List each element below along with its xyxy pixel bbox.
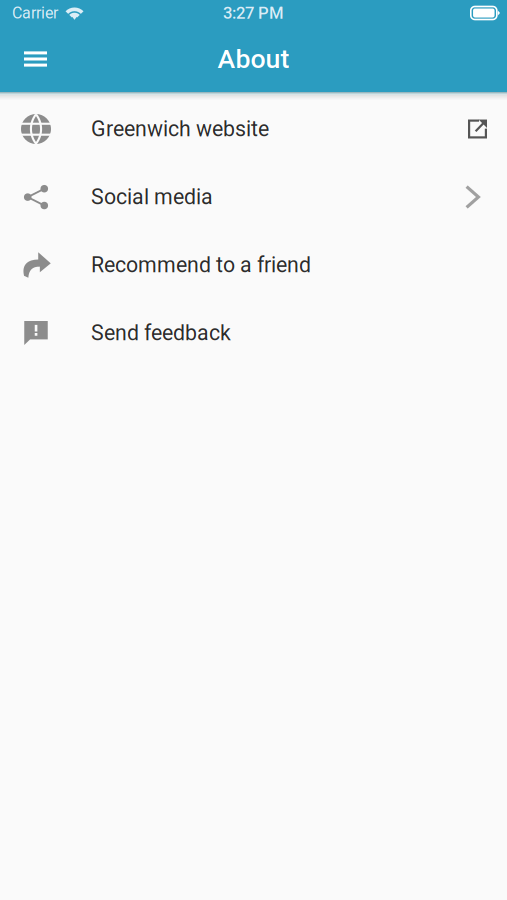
button[interactable]: Greenwich website <box>0 95 507 163</box>
staticText: Carrier <box>12 4 58 22</box>
staticText: Send feedback <box>91 320 231 345</box>
button[interactable]: Social media <box>0 163 507 231</box>
button[interactable]: Menu <box>0 32 65 86</box>
staticText: Greenwich website <box>91 116 269 141</box>
staticText: Social media <box>91 184 213 209</box>
staticText: Recommend to a friend <box>91 252 311 277</box>
staticText: About <box>217 43 289 75</box>
button[interactable]: Send feedback <box>0 299 507 367</box>
staticText: 3:27 PM <box>223 3 284 23</box>
button[interactable]: Recommend to a friend <box>0 231 507 299</box>
